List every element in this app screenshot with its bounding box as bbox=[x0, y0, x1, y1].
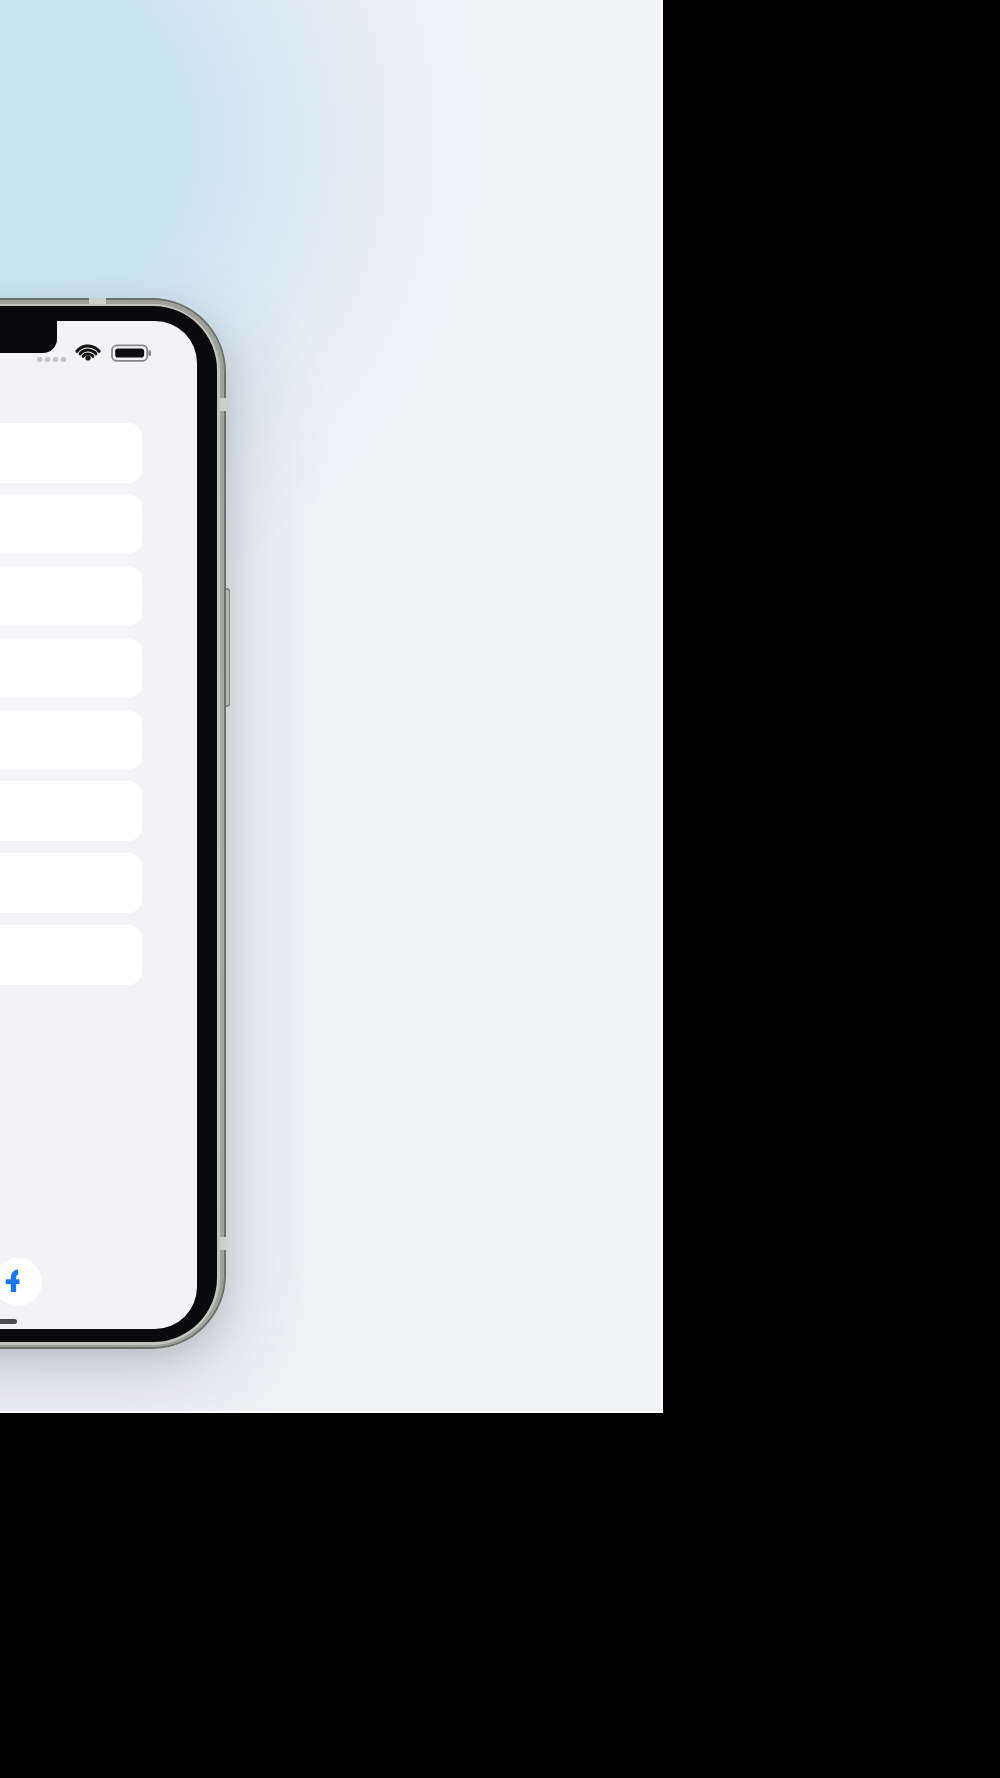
button[interactable] bbox=[0, 1258, 42, 1306]
